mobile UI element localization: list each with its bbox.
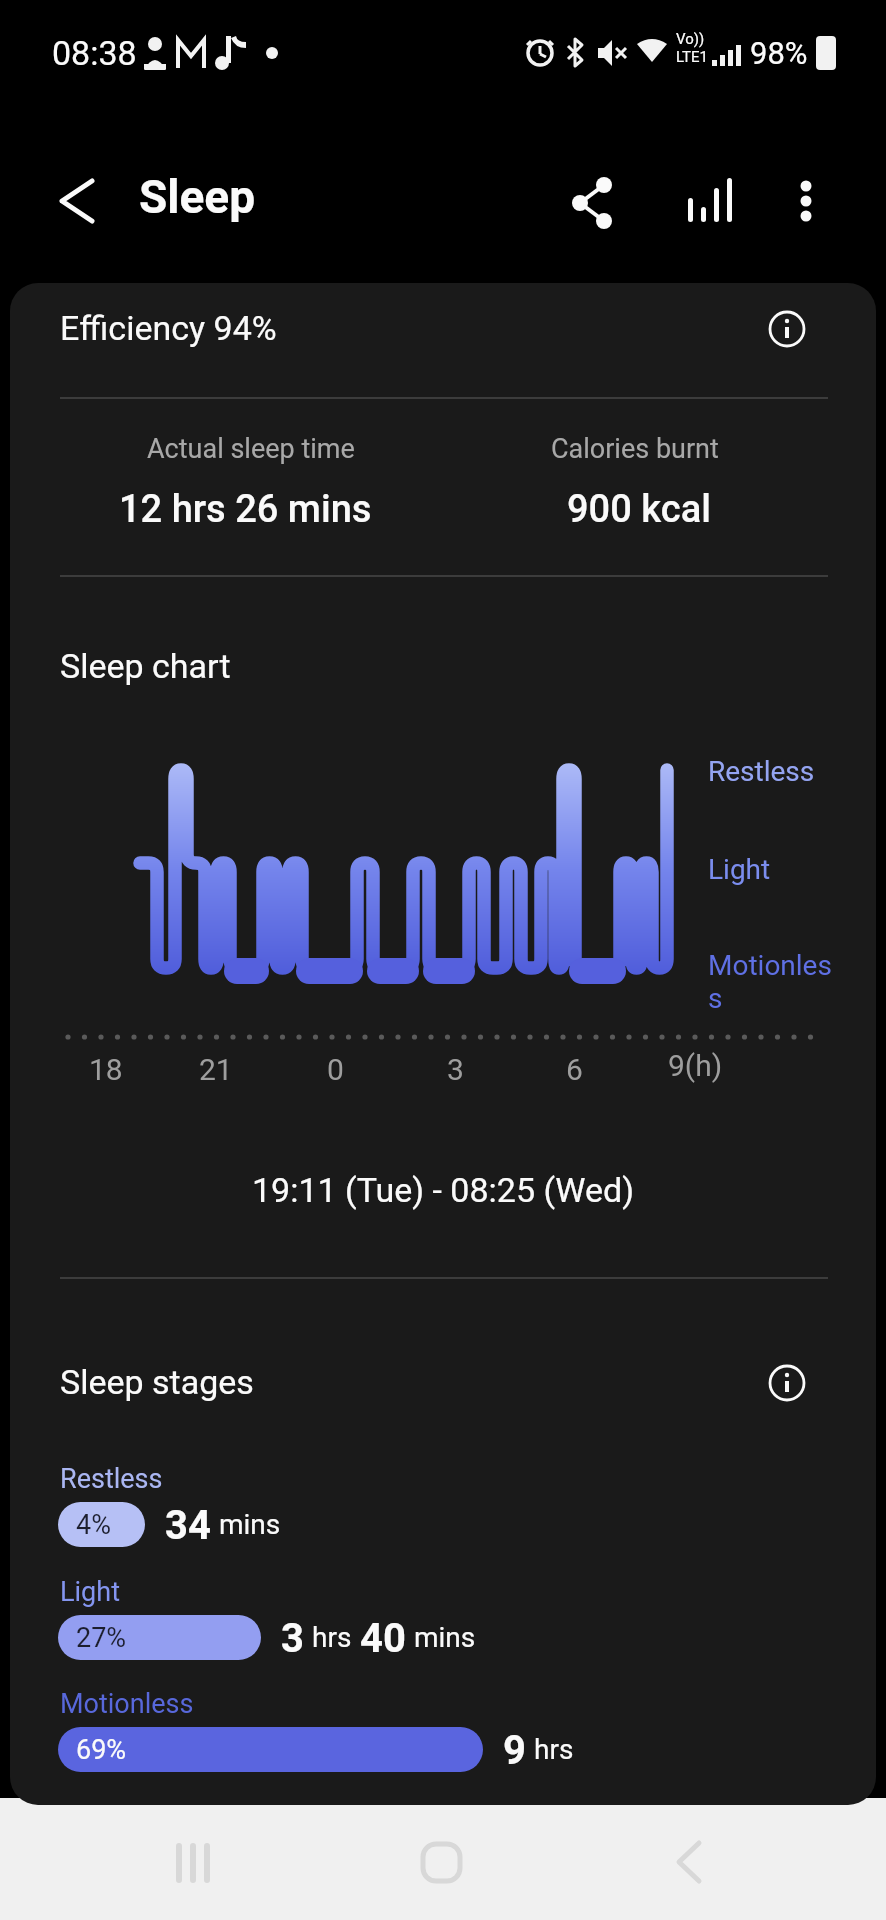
button[interactable]: 69% xyxy=(58,1727,483,1772)
staticText: 900 kcal xyxy=(567,487,711,532)
staticText: 69% xyxy=(76,1734,127,1766)
button[interactable] xyxy=(156,1833,232,1893)
button[interactable]: 4% xyxy=(58,1502,145,1547)
staticText: Motionles s xyxy=(708,949,832,1015)
button[interactable] xyxy=(651,1833,727,1893)
staticText: 3 xyxy=(281,1615,304,1660)
button[interactable] xyxy=(775,165,837,235)
staticText: 34 xyxy=(165,1502,211,1547)
staticText: 9 xyxy=(503,1727,526,1772)
staticText: 0 xyxy=(327,1052,344,1087)
button[interactable] xyxy=(40,165,110,235)
staticText: Restless xyxy=(60,1463,163,1495)
staticText: 12 hrs 26 mins xyxy=(119,487,372,532)
button[interactable] xyxy=(757,1353,817,1413)
button[interactable] xyxy=(403,1833,479,1893)
staticText: 27% xyxy=(76,1622,127,1654)
staticText: Sleep chart xyxy=(60,646,231,686)
staticText: Sleep stages xyxy=(60,1362,254,1402)
staticText: Light xyxy=(60,1576,120,1608)
staticText: mins xyxy=(219,1508,281,1541)
staticText: Calories burnt xyxy=(551,433,719,465)
button[interactable]: 27% xyxy=(58,1615,261,1660)
staticText: Restless xyxy=(708,755,815,788)
staticText: 98% xyxy=(750,35,808,71)
staticText: LTE1 xyxy=(676,48,708,66)
staticText: Sleep xyxy=(139,170,256,224)
staticText: Actual sleep time xyxy=(147,433,355,465)
staticText: hrs xyxy=(312,1621,352,1654)
staticText: 18 xyxy=(89,1052,123,1087)
staticText: 9(h) xyxy=(668,1048,723,1083)
staticText: 40 xyxy=(360,1615,406,1660)
button[interactable] xyxy=(560,165,630,235)
staticText: Vo)) xyxy=(676,30,705,48)
staticText: Motionless xyxy=(60,1688,194,1720)
button[interactable] xyxy=(757,299,817,359)
staticText: 3 xyxy=(447,1052,464,1087)
staticText: 08:38 xyxy=(52,33,137,73)
staticText: Light xyxy=(708,853,771,886)
staticText: Efficiency 94% xyxy=(60,308,277,348)
staticText: 21 xyxy=(199,1052,233,1087)
staticText: mins xyxy=(414,1621,476,1654)
staticText: 19:11 (Tue) - 08:25 (Wed) xyxy=(252,1170,635,1210)
staticText: 6 xyxy=(566,1052,583,1087)
staticText: hrs xyxy=(534,1733,574,1766)
staticText: 4% xyxy=(76,1509,111,1541)
button[interactable] xyxy=(675,165,745,235)
